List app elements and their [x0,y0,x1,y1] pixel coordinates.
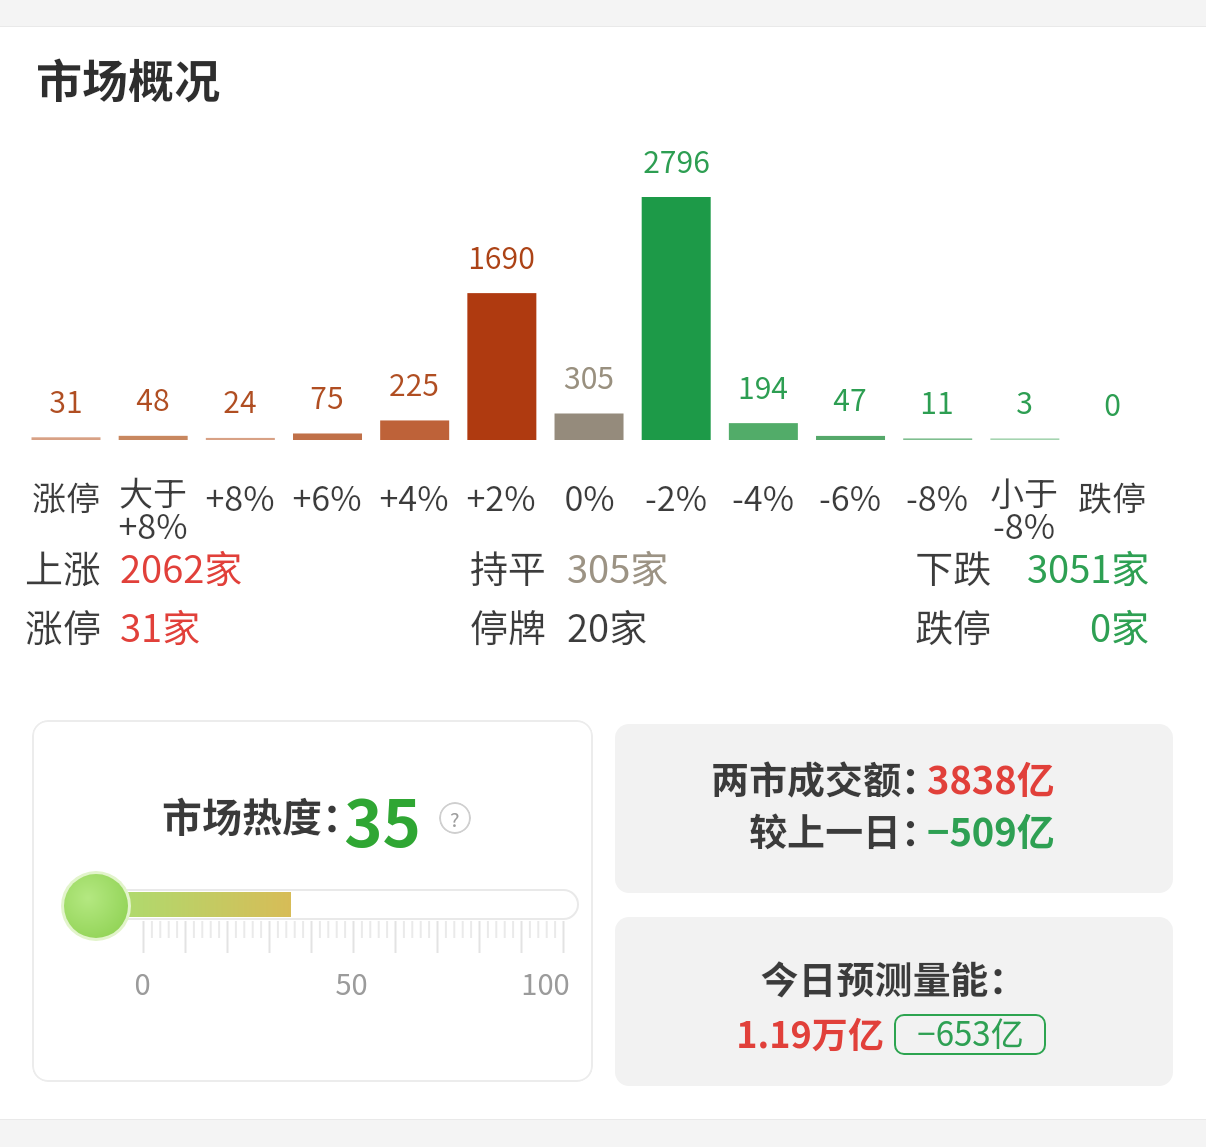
staticText: 100 [521,961,570,1003]
staticText: 305 [564,354,614,397]
staticText: 0% [564,472,615,521]
staticText: -8% [906,472,968,521]
button[interactable] [615,917,1173,1086]
button[interactable] [615,724,1173,893]
staticText: 2062家 [120,539,243,594]
staticText: 31 [49,378,83,421]
staticText: 跌停 [915,598,992,653]
staticText: +2% [466,472,536,521]
staticText: 48 [136,376,170,419]
staticText: +8% [205,472,275,521]
staticText: 今日预测量能： [760,950,1027,1005]
staticText: 1.19万亿 [736,1006,884,1058]
staticText: 50 [335,961,368,1003]
staticText: 上涨 [25,539,102,594]
staticText: 305家 [567,539,669,594]
staticText: 3 [1016,379,1033,422]
staticText: +6% [292,472,362,521]
staticText: ? [450,804,460,833]
staticText: -2% [645,472,707,521]
staticText: 市场概况 [36,45,220,105]
staticText: 3838亿 [927,750,1055,805]
staticText: 194 [738,364,788,407]
staticText: 225 [389,361,439,404]
staticText: 20家 [567,598,648,653]
staticText: +4% [379,472,449,521]
staticText: 24 [223,378,257,421]
button[interactable] [32,720,593,1082]
staticText: 1690 [468,234,535,277]
staticText: 市场热度： [162,786,362,844]
staticText: −653亿 [917,1008,1024,1056]
staticText: 涨停 [32,472,100,521]
staticText: 持平 [470,539,547,594]
button[interactable] [894,1014,1046,1055]
staticText: 大于 +8% [118,467,188,547]
staticText: −509亿 [927,802,1055,857]
staticText: 跌停 [1078,472,1146,521]
staticText: 11 [920,379,954,422]
button[interactable]: ? [439,802,471,834]
staticText: 3051家 [1027,539,1150,594]
staticText: 0 [1104,381,1121,424]
staticText: 35 [344,772,421,852]
staticText: 75 [310,374,344,417]
staticText: 较上一日： [749,802,940,857]
staticText: 0 [134,961,151,1003]
staticText: 0家 [1090,598,1150,653]
staticText: 31家 [120,598,201,653]
staticText: 小于 -8% [990,467,1058,547]
staticText: 47 [833,376,867,419]
staticText: 两市成交额： [711,750,940,805]
staticText: 涨停 [25,598,102,653]
staticText: -4% [732,472,794,521]
staticText: -6% [819,472,881,521]
staticText: 2796 [643,138,710,181]
staticText: 下跌 [915,539,992,594]
staticText: 停牌 [470,598,547,653]
